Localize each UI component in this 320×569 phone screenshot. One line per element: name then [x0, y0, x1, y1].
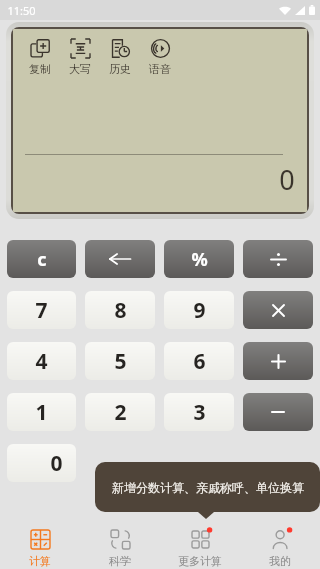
staticText: 我的 — [269, 554, 291, 568]
staticText: 更多计算 — [178, 554, 222, 568]
button[interactable]: 0 — [7, 444, 76, 482]
button[interactable]: 语音 — [147, 38, 173, 76]
button[interactable]: 复制 — [27, 38, 53, 76]
staticText: 新增分数计算、亲戚称呼、单位换算 — [112, 480, 304, 495]
staticText: 语音 — [149, 62, 171, 76]
staticText: 11:50 — [7, 3, 36, 18]
other: Plus — [272, 355, 285, 368]
staticText: 0 — [279, 161, 295, 198]
staticText: % — [191, 247, 208, 272]
staticText: 计算 — [29, 554, 51, 568]
button[interactable]: 6 — [164, 342, 234, 380]
staticText: 历史 — [109, 62, 131, 76]
button[interactable]: 4 — [7, 342, 76, 380]
button[interactable]: 9 — [164, 291, 234, 329]
staticText: 1 — [35, 398, 48, 427]
button[interactable]: 2 — [85, 393, 155, 431]
button[interactable]: Backspace — [85, 240, 155, 278]
other: Backspace — [108, 252, 132, 266]
button[interactable]: 5 — [85, 342, 155, 380]
staticText: 大写 — [69, 62, 91, 76]
staticText: 7 — [35, 296, 48, 325]
button[interactable]: 1 — [7, 393, 76, 431]
button[interactable]: Divide — [243, 240, 313, 278]
button[interactable]: 大写 — [67, 38, 93, 76]
button[interactable]: % — [164, 240, 234, 278]
button[interactable]: Plus — [243, 342, 313, 380]
button[interactable]: c — [7, 240, 76, 278]
button[interactable]: Multiply — [243, 291, 313, 329]
other: Minus — [272, 410, 284, 414]
staticText: 5 — [114, 347, 127, 376]
staticText: 科学 — [109, 554, 131, 568]
button[interactable]: 新增分数计算、亲戚称呼、单位换算 — [95, 462, 320, 512]
staticText: 4 — [35, 347, 48, 376]
staticText: 8 — [114, 296, 127, 325]
button[interactable]: 计算 — [0, 522, 80, 568]
staticText: 2 — [114, 398, 127, 427]
button[interactable]: 7 — [7, 291, 76, 329]
button[interactable]: Minus — [243, 393, 313, 431]
button[interactable]: 更多计算 — [160, 522, 240, 568]
button[interactable]: 3 — [164, 393, 234, 431]
staticText: 复制 — [29, 62, 51, 76]
button[interactable]: 8 — [85, 291, 155, 329]
button[interactable]: 我的 — [240, 522, 320, 568]
other: Multiply — [273, 305, 284, 316]
staticText: 6 — [193, 347, 206, 376]
other: Divide — [271, 252, 286, 267]
button[interactable]: 科学 — [80, 522, 160, 568]
staticText: c — [37, 247, 47, 272]
staticText: 3 — [193, 398, 206, 427]
staticText: 9 — [193, 296, 206, 325]
staticText: 0 — [50, 449, 63, 478]
button[interactable]: 历史 — [107, 38, 133, 76]
